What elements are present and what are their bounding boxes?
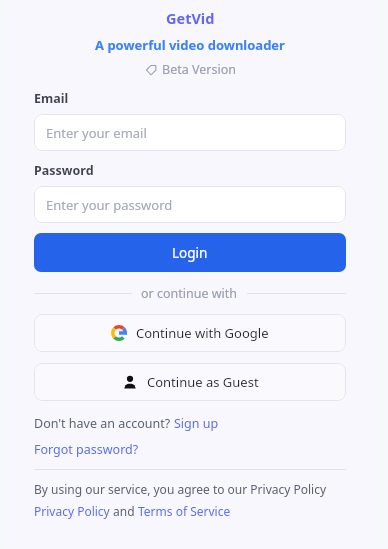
staticText: Login (172, 244, 208, 262)
button[interactable]: Privacy Policy (34, 503, 110, 519)
staticText: Continue with Google (136, 324, 269, 342)
staticText: Sign up (174, 415, 219, 432)
button[interactable]: Login (34, 233, 346, 272)
staticText: or continue with (141, 285, 238, 302)
button[interactable]: Enter your password (34, 186, 346, 223)
staticText: Continue as Guest (147, 373, 259, 391)
button[interactable]: Enter your email (34, 114, 346, 151)
staticText: Privacy Policy (34, 503, 110, 519)
staticText: Terms of Service (138, 503, 231, 519)
button[interactable]: Continue with Google (34, 314, 346, 352)
staticText: Enter your email (46, 124, 147, 142)
button[interactable]: Forgot password? (34, 441, 139, 458)
button[interactable]: Terms of Service (138, 503, 231, 519)
staticText: Email (34, 90, 69, 107)
staticText: A powerful video downloader (95, 36, 285, 54)
staticText: By using our service, you agree to our P… (34, 481, 327, 497)
staticText: Enter your password (46, 196, 173, 214)
staticText: Beta Version (162, 61, 236, 78)
button[interactable]: Sign up (174, 415, 219, 432)
staticText: Password (34, 162, 94, 179)
staticText: and (110, 503, 138, 519)
staticText: Don't have an account? (34, 415, 174, 432)
button[interactable]: Continue as Guest (34, 363, 346, 401)
staticText: GetVid (166, 8, 215, 28)
staticText: Forgot password? (34, 441, 139, 458)
